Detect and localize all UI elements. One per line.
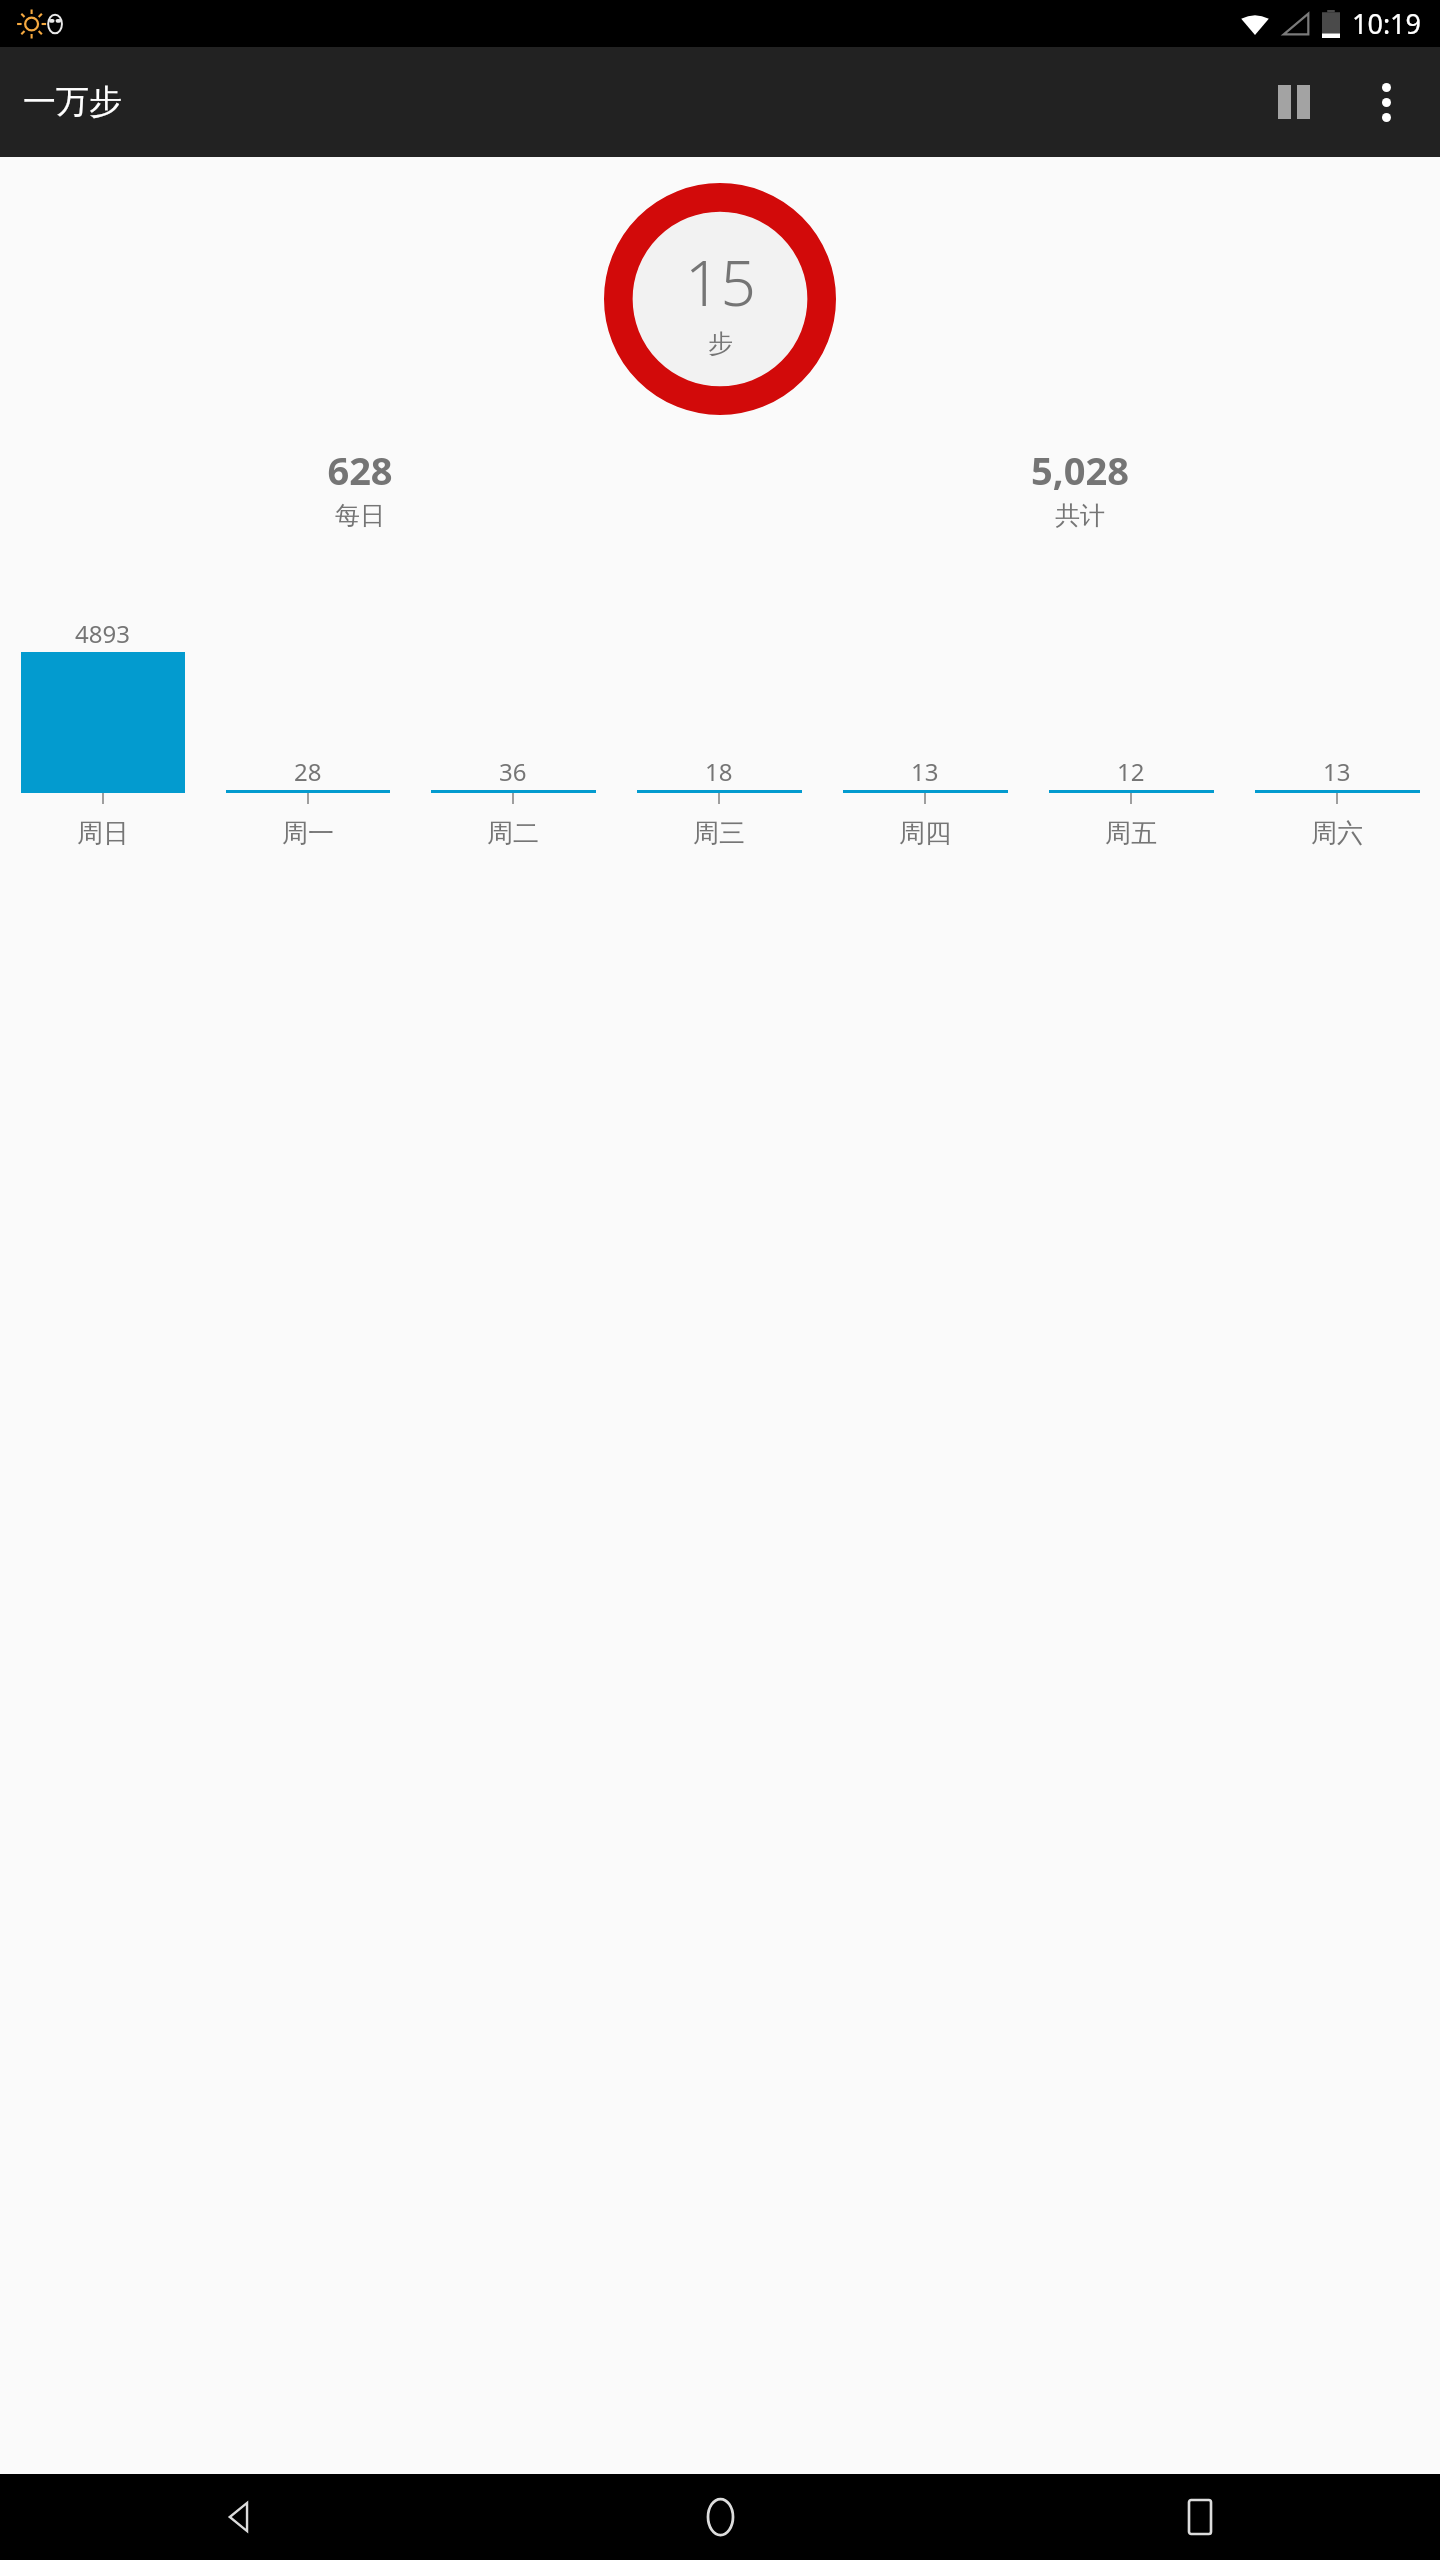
button[interactable]: 13 bbox=[822, 755, 1028, 793]
staticText: 一万步 bbox=[23, 81, 122, 123]
button[interactable]: 36 bbox=[410, 755, 616, 793]
staticText: 每日 bbox=[335, 500, 385, 531]
staticText: 36 bbox=[499, 755, 527, 788]
staticText: 周三 bbox=[693, 817, 745, 850]
button[interactable]: 13 bbox=[1234, 755, 1440, 793]
button[interactable]: Back bbox=[0, 2474, 480, 2560]
staticText: 28 bbox=[294, 755, 322, 788]
staticText: 5,028 bbox=[1031, 444, 1129, 496]
staticText: 10:19 bbox=[1352, 5, 1422, 42]
staticText: 18 bbox=[705, 755, 733, 788]
button[interactable]: Step progress bbox=[604, 183, 836, 415]
staticText: 周日 bbox=[77, 817, 129, 850]
button[interactable]: 28 bbox=[205, 755, 410, 793]
staticText: 628 bbox=[327, 444, 393, 496]
button[interactable]: Recent apps bbox=[960, 2474, 1440, 2560]
staticText: 周五 bbox=[1105, 817, 1157, 850]
button[interactable]: 12 bbox=[1028, 755, 1234, 793]
button[interactable]: Home bbox=[480, 2474, 960, 2560]
button[interactable]: More options bbox=[1350, 66, 1422, 138]
button[interactable]: 4893 bbox=[0, 617, 205, 793]
button[interactable]: 5,028 bbox=[720, 440, 1440, 535]
staticText: 12 bbox=[1117, 755, 1145, 788]
button[interactable]: 628 bbox=[0, 440, 720, 535]
staticText: 共计 bbox=[1055, 500, 1105, 531]
staticText: 周二 bbox=[487, 817, 539, 850]
staticText: 15 bbox=[685, 240, 756, 324]
staticText: 13 bbox=[911, 755, 939, 788]
staticText: 周六 bbox=[1311, 817, 1363, 850]
staticText: 周一 bbox=[282, 817, 334, 850]
staticText: 周四 bbox=[899, 817, 951, 850]
button[interactable]: Pause bbox=[1258, 66, 1330, 138]
staticText: 4893 bbox=[75, 617, 130, 650]
staticText: 步 bbox=[708, 328, 733, 359]
staticText: 13 bbox=[1323, 755, 1351, 788]
button[interactable]: 18 bbox=[616, 755, 822, 793]
